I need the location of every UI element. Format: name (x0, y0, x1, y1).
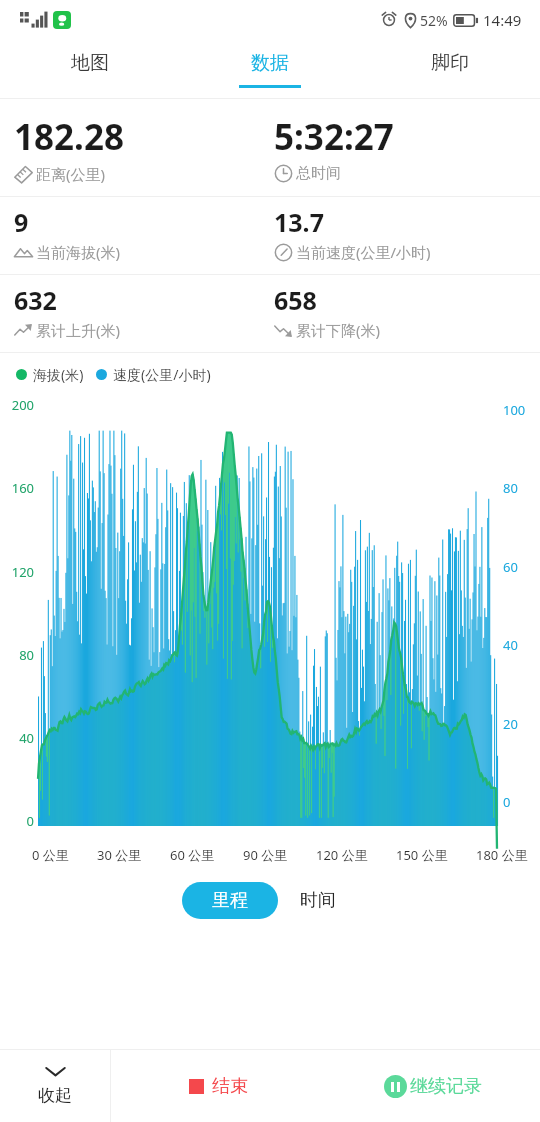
staticText: 当前海拔(米) (36, 242, 121, 262)
staticText: 80 (503, 479, 537, 497)
button[interactable]: 里程 (182, 882, 278, 919)
staticText: 当前速度(公里/小时) (296, 242, 431, 262)
staticText: 海拔(米) (33, 365, 84, 384)
staticText: 120 (2, 563, 34, 581)
staticText: 结束 (212, 1075, 248, 1098)
button[interactable]: 地图 (0, 40, 180, 98)
staticText: 里程 (212, 889, 248, 912)
staticText: 60 (503, 558, 537, 576)
button[interactable]: 时间 (278, 882, 358, 919)
staticText: 60 公里 (170, 846, 215, 864)
staticText: 数据 (251, 51, 289, 75)
staticText: 5:32:27 (274, 113, 394, 161)
button[interactable]: 收起 (0, 1050, 110, 1122)
staticText: 658 (274, 283, 317, 317)
button[interactable]: 结束 (111, 1050, 325, 1122)
staticText: 0 公里 (32, 846, 69, 864)
staticText: 182.28 (14, 113, 124, 161)
button[interactable]: 继续记录 (325, 1050, 540, 1122)
staticText: 0 (503, 793, 537, 811)
staticText: 累计上升(米) (36, 320, 121, 340)
staticText: 30 公里 (97, 846, 142, 864)
staticText: 180 公里 (476, 846, 528, 864)
staticText: 9 (14, 205, 29, 239)
staticText: 累计下降(米) (296, 320, 381, 340)
button[interactable]: 脚印 (360, 40, 540, 98)
staticText: 20 (503, 715, 537, 733)
staticText: 继续记录 (410, 1075, 482, 1098)
staticText: 距离(公里) (36, 164, 106, 184)
staticText: 90 公里 (243, 846, 288, 864)
staticText: 总时间 (296, 164, 341, 183)
staticText: 14:49 (483, 10, 522, 30)
staticText: 160 (2, 479, 34, 497)
staticText: 13.7 (274, 205, 324, 239)
staticText: 150 公里 (396, 846, 448, 864)
staticText: 40 (503, 636, 537, 654)
staticText: 52% (420, 11, 448, 30)
staticText: 632 (14, 283, 57, 317)
staticText: 收起 (38, 1085, 72, 1106)
staticText: 0 (2, 812, 34, 830)
staticText: 脚印 (431, 51, 469, 75)
staticText: 200 (2, 396, 34, 414)
staticText: 80 (2, 646, 34, 664)
staticText: 120 公里 (316, 846, 368, 864)
staticText: 100 (503, 401, 537, 419)
staticText: 40 (2, 729, 34, 747)
staticText: 速度(公里/小时) (113, 365, 211, 384)
button[interactable]: 数据 (180, 40, 360, 98)
staticText: 时间 (300, 889, 336, 912)
staticText: 地图 (71, 51, 109, 75)
